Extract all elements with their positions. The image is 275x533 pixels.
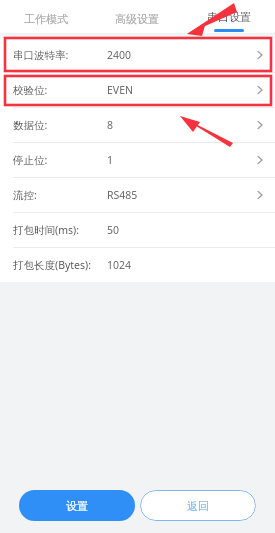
button[interactable]: 校验位: (0, 73, 275, 108)
staticText: 串口设置 (207, 10, 251, 24)
button[interactable]: 数据位: (0, 108, 275, 143)
staticText: 校验位: (13, 83, 48, 97)
button[interactable]: 返回 (140, 490, 256, 521)
button[interactable]: 流控: (0, 178, 275, 213)
staticText: 50 (107, 223, 120, 237)
staticText: 2400 (107, 48, 132, 62)
button[interactable]: 停止位: (0, 143, 275, 178)
button[interactable]: 串口波特率: (0, 38, 275, 73)
staticText: 打包长度(Bytes): (13, 258, 92, 272)
staticText: EVEN (107, 83, 133, 97)
staticText: RS485 (107, 188, 138, 202)
staticText: 设置 (66, 499, 88, 513)
button[interactable]: 打包长度(Bytes): (0, 248, 275, 282)
button[interactable]: 设置 (19, 490, 135, 521)
button[interactable]: 串口设置 (183, 0, 275, 33)
staticText: 串口波特率: (13, 48, 69, 62)
staticText: 返回 (187, 499, 209, 513)
staticText: 8 (107, 118, 114, 132)
button[interactable]: 打包时间(ms): (0, 213, 275, 248)
staticText: 1 (107, 153, 114, 167)
staticText: 数据位: (13, 118, 48, 132)
staticText: 打包时间(ms): (13, 223, 79, 237)
button[interactable]: 高级设置 (91, 0, 183, 33)
staticText: 工作模式 (24, 12, 68, 26)
staticText: 1024 (107, 258, 132, 272)
button[interactable]: 工作模式 (0, 0, 91, 33)
staticText: 高级设置 (115, 12, 159, 26)
staticText: 流控: (13, 188, 37, 202)
staticText: 停止位: (13, 153, 48, 167)
